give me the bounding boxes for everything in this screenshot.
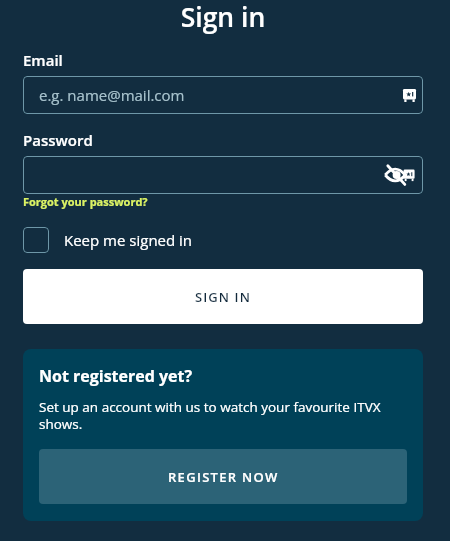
- staticText: SIGN IN: [195, 288, 251, 306]
- button[interactable]: Autofill email: [403, 89, 416, 102]
- staticText: Sign in: [0, 0, 446, 35]
- button[interactable]: Keep me signed in: [23, 227, 193, 253]
- staticText: e.g. name@mail.com: [39, 85, 185, 105]
- staticText: Email: [23, 50, 63, 70]
- button[interactable]: SIGN IN: [23, 269, 423, 324]
- button[interactable]: REGISTER NOW: [39, 449, 407, 504]
- button[interactable]: Forgot your password?: [23, 194, 148, 209]
- staticText: Set up an account with us to watch your …: [39, 398, 407, 433]
- staticText: Keep me signed in: [64, 230, 193, 250]
- button[interactable]: e.g. name@mail.com: [23, 76, 423, 114]
- button[interactable]: Show password: [23, 156, 423, 194]
- staticText: REGISTER NOW: [168, 468, 279, 486]
- staticText: Password: [23, 130, 93, 150]
- staticText: Not registered yet?: [39, 365, 193, 387]
- staticText: Forgot your password?: [23, 194, 148, 209]
- button[interactable]: Show password: [385, 164, 416, 186]
